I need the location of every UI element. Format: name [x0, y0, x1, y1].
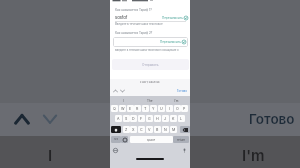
button[interactable]: K	[170, 115, 177, 122]
button[interactable]: Backspace	[180, 126, 190, 133]
staticText: The	[147, 99, 153, 103]
button[interactable]: Previous	[113, 89, 118, 93]
staticText: B	[156, 128, 159, 132]
button[interactable]: N	[162, 126, 169, 133]
button[interactable]: L	[178, 115, 185, 122]
staticText: M	[172, 128, 176, 132]
button[interactable]: C	[138, 126, 145, 133]
button[interactable]: Dictation	[182, 148, 187, 153]
button[interactable]: The	[136, 96, 163, 105]
button[interactable]: Перезаписать	[113, 37, 188, 47]
staticText: к шагу шаблона	[140, 81, 160, 84]
staticText: S	[125, 117, 128, 121]
staticText: J	[164, 117, 167, 121]
button[interactable]: R	[134, 105, 141, 112]
button[interactable]: Previous field	[15, 114, 29, 124]
staticText: I	[123, 99, 124, 103]
staticText: 123	[114, 138, 118, 141]
button[interactable]: V	[146, 126, 153, 133]
staticText: space	[147, 138, 156, 142]
button[interactable]: I	[166, 105, 173, 112]
button[interactable]: S	[123, 115, 130, 122]
button[interactable]: F	[138, 115, 145, 122]
staticText: return	[177, 138, 186, 142]
staticText: A	[117, 117, 120, 121]
staticText: D	[132, 117, 135, 121]
button[interactable]: Next	[120, 89, 125, 93]
button[interactable]: U	[158, 105, 165, 112]
staticText: Введите в течение шага текстовое	[115, 22, 163, 25]
button[interactable]: Z	[123, 126, 130, 133]
button[interactable]: W	[119, 105, 126, 112]
button[interactable]: A	[115, 115, 122, 122]
button[interactable]: X	[130, 126, 137, 133]
staticText: P	[183, 107, 186, 111]
button[interactable]: Shift	[111, 126, 121, 133]
staticText: Готово	[177, 89, 187, 93]
staticText: Y	[152, 107, 155, 111]
staticText: I'm	[242, 146, 265, 164]
staticText: I	[169, 107, 170, 111]
button[interactable]: O	[174, 105, 181, 112]
button[interactable]: M	[170, 126, 177, 133]
staticText: Перезаписать	[160, 40, 181, 44]
button[interactable]: Globe	[113, 148, 118, 153]
button[interactable]: E	[127, 105, 134, 112]
staticText: F	[140, 117, 143, 121]
staticText: U	[160, 107, 163, 111]
staticText: Отправить	[142, 63, 159, 67]
staticText: Как называется Тариф 2?	[115, 31, 153, 35]
staticText: W	[121, 107, 125, 111]
staticText: V	[148, 128, 151, 132]
staticText: R	[136, 107, 139, 111]
staticText: Q	[113, 107, 116, 111]
staticText: H	[156, 117, 159, 121]
button[interactable]: Numbers	[111, 136, 121, 143]
button[interactable]: Y	[150, 105, 157, 112]
staticText: G	[148, 117, 151, 121]
staticText: N	[164, 128, 167, 132]
staticText: Перезаписать	[162, 16, 183, 20]
staticText: C	[140, 128, 143, 132]
button[interactable]: D	[130, 115, 137, 122]
staticText: Готово	[249, 111, 295, 127]
button[interactable]: I'm	[163, 96, 190, 105]
button[interactable]: J	[162, 115, 169, 122]
button[interactable]: B	[154, 126, 161, 133]
button[interactable]: I	[110, 96, 136, 105]
button[interactable]: H	[154, 115, 161, 122]
staticText: I'm	[174, 99, 179, 103]
button[interactable]: G	[146, 115, 153, 122]
staticText: T	[144, 107, 147, 111]
button[interactable]: Q	[111, 105, 118, 112]
staticText: O	[176, 107, 179, 111]
button[interactable]: P	[181, 105, 188, 112]
button[interactable]: return	[173, 136, 189, 143]
button[interactable]: Перезаписать	[162, 16, 188, 20]
staticText: sdsfdf	[115, 15, 128, 20]
button[interactable]: Emoji	[121, 136, 128, 143]
button[interactable]: Отправить	[112, 59, 189, 70]
staticText: E	[129, 107, 132, 111]
staticText: L	[180, 117, 183, 121]
staticText: Как называется Тариф 1?	[115, 8, 152, 12]
staticText: K	[172, 117, 175, 121]
staticText: X	[132, 128, 135, 132]
button[interactable]: Next field	[43, 114, 57, 124]
staticText: Z	[125, 128, 128, 132]
staticText: Введите в течение шага текстовое сообщен…	[115, 48, 179, 51]
button[interactable]: T	[142, 105, 149, 112]
staticText: I	[48, 146, 53, 164]
button[interactable]: space	[130, 136, 173, 143]
